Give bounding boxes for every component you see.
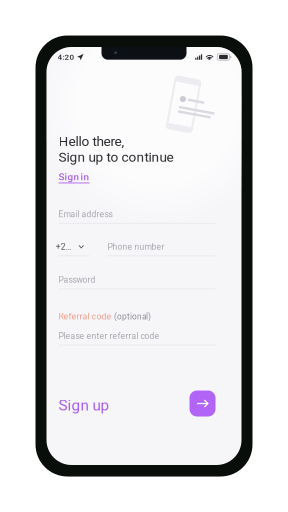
button[interactable]: Sign up [58,399,109,411]
staticText: Sign up to continue [58,149,173,165]
button[interactable]: Please enter referral code [58,332,215,345]
button[interactable]: Continue [189,390,215,416]
button[interactable]: Email address [58,211,215,224]
staticText: +234 [56,242,75,252]
button[interactable]: Password [58,276,215,289]
staticText: Sign up [58,396,109,414]
staticText: Hello there, [58,133,124,149]
staticText: Email address [58,209,112,219]
staticText: (optional) [114,312,151,321]
button[interactable]: Phone number [107,243,215,256]
staticText: Please enter referral code [58,331,159,341]
button[interactable]: Sign in [58,173,89,183]
staticText: Sign in [58,171,88,183]
button[interactable]: +234 [58,243,89,256]
staticText: 4:20 [57,52,74,62]
staticText: Phone number [107,242,164,252]
staticText: Referral code [58,311,111,322]
staticText: Password [58,275,95,285]
